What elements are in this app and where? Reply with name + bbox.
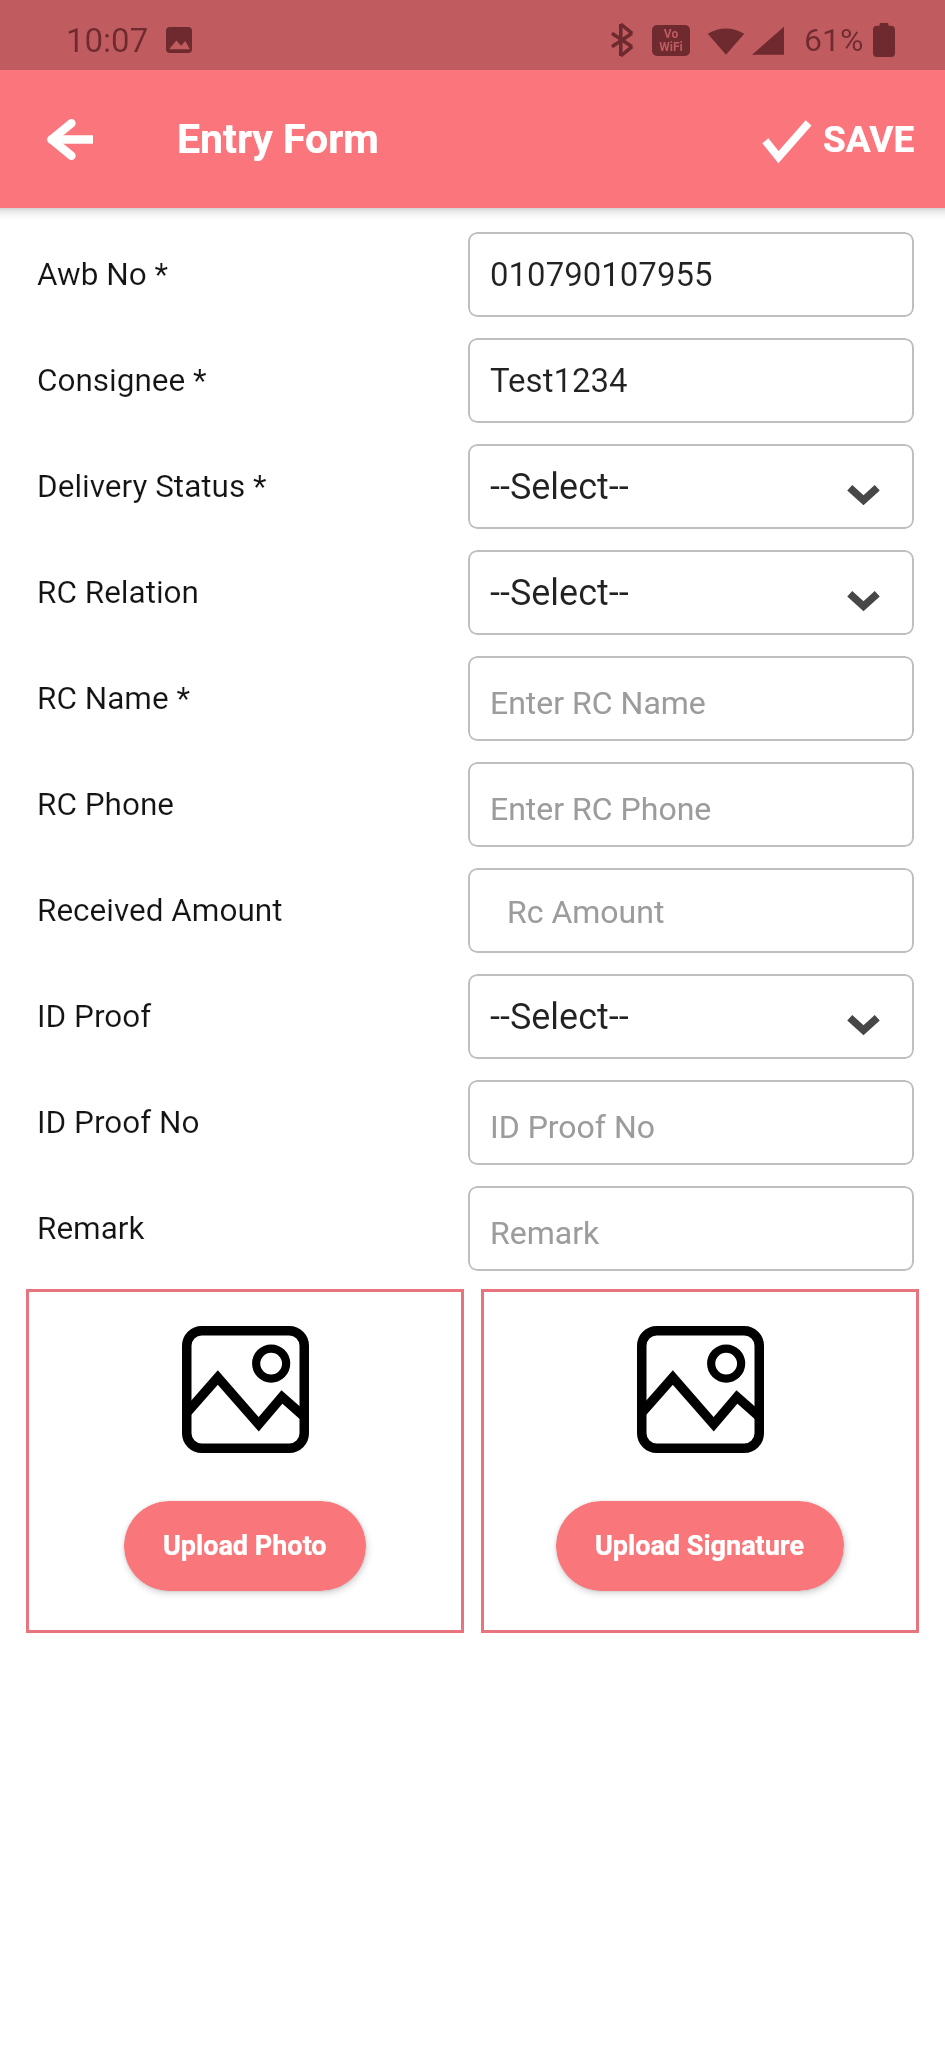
button[interactable]: --Select-- [468,974,914,1059]
staticText: Enter RC Name [490,684,706,722]
staticText: Entry Form [177,115,379,163]
button[interactable]: Delivery Status * [0,433,468,539]
button[interactable]: ID Proof No [0,1069,468,1175]
button[interactable]: Enter RC Name [468,656,914,741]
button[interactable]: Awb No * [0,221,468,327]
staticText: Upload Photo [163,1530,327,1562]
staticText: SAVE [823,118,915,161]
button[interactable]: --Select-- [468,444,914,529]
button[interactable]: Upload Photo [26,1289,464,1633]
staticText: Upload Signature [595,1530,805,1562]
staticText: RC Relation [37,574,199,611]
staticText: Remark [490,1214,600,1252]
button[interactable]: Back [30,99,110,179]
button[interactable]: Upload Photo [124,1501,366,1591]
button[interactable]: Upload Signature [556,1501,844,1591]
button[interactable]: 010790107955 [468,232,914,317]
staticText: ID Proof [37,998,152,1035]
button[interactable]: Received Amount [0,857,468,963]
staticText: --Select-- [490,466,629,508]
staticText: Vo WiFi [659,27,683,54]
staticText: ID Proof No [490,1108,655,1146]
button[interactable]: RC Name * [0,645,468,751]
button[interactable]: ID Proof No [468,1080,914,1165]
staticText: Consignee * [37,362,207,399]
staticText: Delivery Status * [37,468,267,505]
button[interactable]: --Select-- [468,550,914,635]
staticText: 10:07 [66,21,149,60]
staticText: Test1234 [490,361,628,400]
staticText: Remark [37,1210,145,1247]
staticText: 010790107955 [490,255,713,294]
button[interactable]: RC Relation [0,539,468,645]
staticText: --Select-- [490,572,629,614]
staticText: --Select-- [490,996,629,1038]
button[interactable]: Remark [0,1175,468,1281]
staticText: Rc Amount [507,893,665,931]
button[interactable]: Rc Amount [468,868,914,953]
button[interactable]: Test1234 [468,338,914,423]
staticText: Enter RC Phone [490,790,712,828]
staticText: Received Amount [37,892,283,929]
staticText: Awb No * [37,256,169,293]
staticText: ID Proof No [37,1104,200,1141]
button[interactable]: SAVE [757,106,921,173]
staticText: RC Name * [37,680,191,717]
button[interactable]: Enter RC Phone [468,762,914,847]
button[interactable]: Upload Signature [481,1289,919,1633]
button[interactable]: RC Phone [0,751,468,857]
staticText: 61% [804,21,864,59]
button[interactable]: Remark [468,1186,914,1271]
button[interactable]: ID Proof [0,963,468,1069]
button[interactable]: Consignee * [0,327,468,433]
staticText: RC Phone [37,786,175,823]
